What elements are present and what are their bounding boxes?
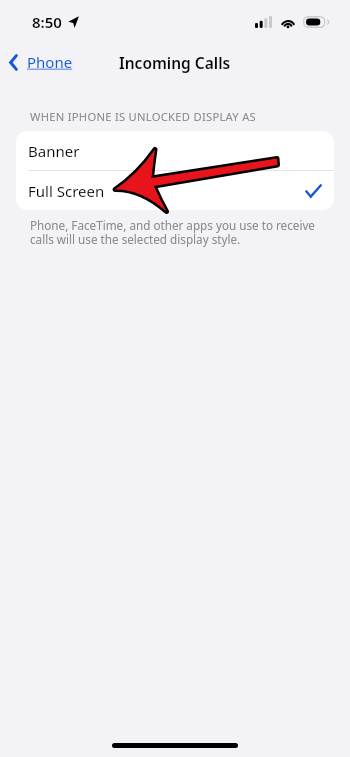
staticText: Phone: [27, 52, 73, 72]
staticText: 8:50: [32, 12, 62, 32]
staticText: Phone, FaceTime, and other apps you use …: [30, 217, 315, 248]
staticText: Full Screen: [28, 181, 105, 201]
button[interactable]: Phone: [5, 49, 77, 75]
button[interactable]: Full Screen: [16, 171, 334, 210]
staticText: WHEN IPHONE IS UNLOCKED DISPLAY AS: [30, 109, 256, 124]
button[interactable]: Banner: [16, 131, 334, 170]
staticText: Banner: [28, 141, 80, 161]
staticText: Incoming Calls: [119, 52, 231, 73]
